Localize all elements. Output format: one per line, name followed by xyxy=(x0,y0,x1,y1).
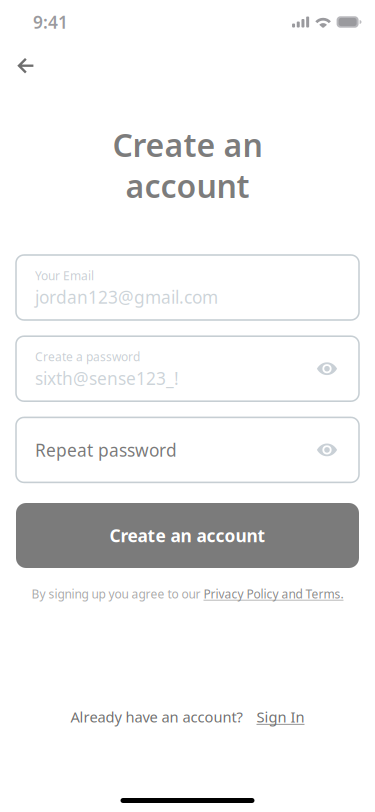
button[interactable]: Create an account xyxy=(16,503,359,568)
staticText: sixth@sense123_! xyxy=(35,367,179,390)
button[interactable]: Show password xyxy=(310,433,344,467)
staticText: Create a password xyxy=(35,349,140,365)
button[interactable]: Show password xyxy=(310,352,344,386)
button[interactable]: Privacy Policy and Terms. xyxy=(203,586,343,602)
staticText: Privacy Policy and Terms. xyxy=(203,586,343,602)
staticText: Your Email xyxy=(35,267,94,283)
staticText: Already have an account? xyxy=(70,707,242,726)
staticText: Create an xyxy=(112,123,262,166)
staticText: Create an account xyxy=(109,524,265,547)
staticText: jordan123@gmail.com xyxy=(35,285,218,308)
staticText: By signing up you agree to our xyxy=(31,586,203,602)
staticText: account xyxy=(125,164,249,207)
staticText: Repeat password xyxy=(35,438,177,461)
staticText: 9:41 xyxy=(33,10,68,33)
staticText: Sign In xyxy=(256,707,304,726)
button[interactable]: Back xyxy=(0,44,47,88)
button[interactable]: Sign In xyxy=(256,707,304,726)
